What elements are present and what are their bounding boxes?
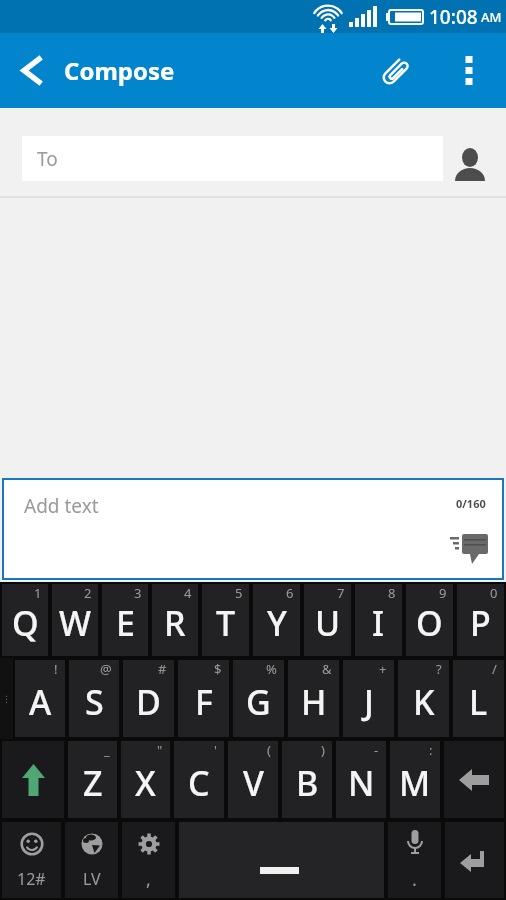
staticText: K bbox=[413, 679, 435, 725]
staticText: D bbox=[136, 679, 161, 725]
button[interactable]: To bbox=[22, 136, 443, 181]
button[interactable] bbox=[450, 534, 490, 568]
staticText: 3 bbox=[134, 584, 142, 602]
staticText: I bbox=[372, 600, 385, 646]
staticText: O bbox=[416, 600, 443, 646]
staticText: J bbox=[364, 679, 374, 725]
staticText: Q bbox=[12, 600, 39, 646]
staticText: ' bbox=[214, 741, 217, 759]
button[interactable]: A bbox=[15, 660, 65, 737]
staticText: " bbox=[157, 741, 163, 759]
button[interactable] bbox=[368, 33, 424, 108]
staticText: F bbox=[195, 679, 213, 725]
button[interactable]: X bbox=[121, 741, 170, 818]
button[interactable]: V bbox=[228, 741, 278, 818]
staticText: Z bbox=[83, 760, 103, 806]
staticText: L bbox=[469, 679, 488, 725]
staticText: X bbox=[135, 760, 156, 806]
staticText: U bbox=[315, 600, 341, 646]
button[interactable]: L bbox=[453, 660, 504, 737]
staticText: @ bbox=[100, 660, 112, 678]
button[interactable]: P bbox=[457, 584, 504, 656]
staticText: 4 bbox=[184, 584, 192, 602]
staticText: ( bbox=[267, 741, 271, 759]
staticText: $ bbox=[214, 660, 222, 678]
button[interactable]: , bbox=[122, 822, 175, 898]
staticText: Y bbox=[267, 600, 287, 646]
button[interactable]: Y bbox=[253, 584, 300, 656]
staticText: S bbox=[85, 679, 104, 725]
staticText: 10:08 bbox=[429, 4, 478, 30]
staticText: R bbox=[164, 600, 186, 646]
button[interactable]: K bbox=[398, 660, 449, 737]
button[interactable]: M bbox=[390, 741, 440, 818]
staticText: : bbox=[429, 741, 433, 759]
staticText: Compose bbox=[64, 54, 175, 87]
button[interactable] bbox=[0, 33, 56, 108]
staticText: ⋮ bbox=[2, 694, 11, 704]
button[interactable]: C bbox=[174, 741, 224, 818]
staticText: 0 bbox=[490, 584, 498, 602]
button[interactable]: S bbox=[69, 660, 119, 737]
staticText: . bbox=[412, 867, 417, 892]
button[interactable] bbox=[444, 741, 504, 818]
staticText: 5 bbox=[235, 584, 243, 602]
button[interactable]: . bbox=[388, 822, 441, 898]
button[interactable]: F bbox=[178, 660, 229, 737]
button[interactable] bbox=[2, 741, 64, 818]
staticText: B bbox=[296, 760, 319, 806]
button[interactable] bbox=[179, 822, 384, 898]
button[interactable]: H bbox=[288, 660, 339, 737]
staticText: 0/160 bbox=[456, 496, 486, 511]
staticText: Add text bbox=[24, 493, 99, 519]
button[interactable]: E bbox=[102, 584, 148, 656]
button[interactable]: U bbox=[304, 584, 351, 656]
staticText: + bbox=[379, 660, 387, 678]
staticText: , bbox=[146, 867, 151, 892]
button[interactable]: W bbox=[52, 584, 98, 656]
staticText: G bbox=[246, 679, 271, 725]
button[interactable]: Q bbox=[2, 584, 48, 656]
button[interactable]: Z bbox=[68, 741, 117, 818]
staticText: # bbox=[158, 660, 167, 678]
staticText: / bbox=[492, 660, 497, 678]
button[interactable]: G bbox=[233, 660, 284, 737]
staticText: W bbox=[59, 600, 91, 646]
staticText: N bbox=[348, 760, 375, 806]
button[interactable]: I bbox=[355, 584, 402, 656]
button[interactable]: N bbox=[336, 741, 386, 818]
staticText: ) bbox=[321, 741, 325, 759]
staticText: 12# bbox=[17, 868, 46, 890]
button[interactable]: R bbox=[152, 584, 198, 656]
button[interactable] bbox=[444, 33, 494, 108]
staticText: 8 bbox=[388, 584, 396, 602]
staticText: A bbox=[29, 679, 52, 725]
staticText: M bbox=[399, 760, 431, 806]
button[interactable]: D bbox=[123, 660, 174, 737]
staticText: _ bbox=[104, 741, 110, 759]
staticText: LV bbox=[83, 868, 101, 890]
button[interactable] bbox=[445, 822, 504, 898]
button[interactable]: 12# bbox=[2, 822, 61, 898]
button[interactable]: T bbox=[202, 584, 249, 656]
staticText: C bbox=[188, 760, 210, 806]
staticText: & bbox=[322, 660, 332, 678]
staticText: To bbox=[37, 146, 58, 172]
staticText: 1 bbox=[34, 584, 42, 602]
staticText: % bbox=[266, 660, 277, 678]
button[interactable]: LV bbox=[65, 822, 118, 898]
button[interactable] bbox=[451, 146, 489, 186]
staticText: T bbox=[216, 600, 236, 646]
staticText: ! bbox=[54, 660, 58, 678]
staticText: 7 bbox=[337, 584, 345, 602]
staticText: 9 bbox=[439, 584, 447, 602]
button[interactable]: Add text bbox=[2, 478, 504, 580]
staticText: E bbox=[116, 600, 135, 646]
staticText: 2 bbox=[84, 584, 92, 602]
staticText: P bbox=[470, 600, 491, 646]
button[interactable]: O bbox=[406, 584, 453, 656]
button[interactable]: B bbox=[282, 741, 332, 818]
staticText: AM bbox=[481, 8, 502, 26]
button[interactable]: J bbox=[343, 660, 394, 737]
staticText: ? bbox=[436, 660, 442, 678]
